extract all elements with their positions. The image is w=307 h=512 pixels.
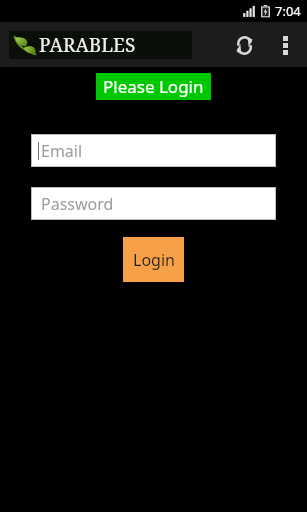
button[interactable]: PARABLES bbox=[9, 31, 192, 59]
staticText: Email bbox=[41, 140, 83, 162]
staticText: Login bbox=[133, 249, 175, 271]
staticText: Please Login bbox=[103, 75, 204, 98]
staticText: PARABLES bbox=[39, 32, 136, 58]
button[interactable]: Email bbox=[32, 135, 275, 166]
button[interactable]: Refresh bbox=[227, 28, 261, 62]
button[interactable]: Login bbox=[123, 237, 184, 282]
staticText: 7:04 bbox=[275, 2, 301, 20]
button[interactable]: More options bbox=[271, 31, 299, 59]
button[interactable]: Password bbox=[32, 188, 275, 219]
staticText: Password bbox=[41, 193, 114, 215]
